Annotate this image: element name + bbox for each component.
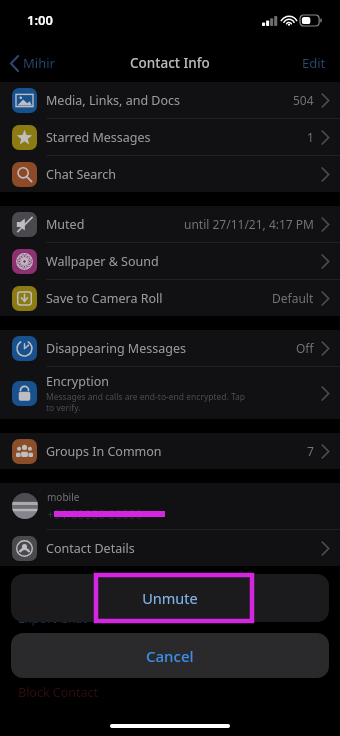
button[interactable]: Groups In Common [0, 433, 340, 469]
staticText: Off [296, 340, 314, 356]
staticText: 1:00 [27, 11, 53, 29]
staticText: 1 [307, 129, 314, 145]
staticText: Wallpaper & Sound [46, 253, 159, 270]
staticText: until 27/11/21, 4:17 PM [184, 216, 314, 232]
button[interactable]: Muted [0, 206, 340, 242]
staticText: Contact Details [46, 540, 135, 557]
staticText: Contact Info [130, 54, 210, 72]
staticText: Starred Messages [46, 129, 151, 146]
button[interactable]: Mihir [0, 48, 65, 78]
button[interactable]: mobile [0, 483, 340, 529]
staticText: Chat Search [46, 166, 116, 183]
staticText: Muted [46, 216, 85, 233]
button[interactable]: Wallpaper & Sound [0, 243, 340, 279]
staticText: Unmute [142, 588, 198, 608]
staticText: 504 [293, 92, 314, 108]
staticText: Messages and calls are end-to-end encryp… [46, 391, 246, 413]
button[interactable]: Unmute [11, 574, 329, 622]
staticText: Groups In Common [46, 443, 162, 460]
staticText: Disappearing Messages [46, 340, 186, 357]
button[interactable]: Save to Camera Roll [0, 280, 340, 316]
button[interactable]: Encryption [0, 367, 340, 419]
button[interactable]: Starred Messages [0, 119, 340, 155]
other: Highlight around Unmute [96, 575, 252, 621]
button[interactable]: Disappearing Messages [0, 330, 340, 366]
button[interactable]: Edit [288, 48, 340, 78]
button[interactable]: Contact Details [0, 530, 340, 566]
staticText: Cancel [146, 646, 194, 666]
staticText: Default [272, 290, 314, 306]
button[interactable]: Cancel [11, 633, 329, 678]
button[interactable]: Media, Links, and Docs [0, 82, 340, 118]
staticText: Encryption [46, 373, 109, 390]
staticText: 7 [307, 443, 314, 459]
staticText: mobile [47, 490, 80, 504]
staticText: Mihir [23, 54, 55, 72]
staticText: Export Chat [18, 610, 87, 627]
staticText: Media, Links, and Docs [46, 92, 181, 109]
staticText: Save to Camera Roll [46, 290, 163, 307]
button[interactable]: Chat Search [0, 156, 340, 192]
staticText: Block Contact [18, 684, 99, 701]
staticText: +91 00000 00000 [47, 506, 143, 522]
